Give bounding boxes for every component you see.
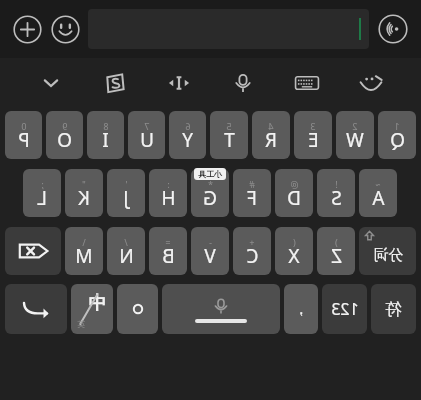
staticText: G bbox=[203, 185, 217, 211]
staticText: O bbox=[57, 127, 72, 153]
button[interactable]: 123 bbox=[322, 284, 367, 334]
button[interactable]: 2 bbox=[336, 111, 374, 159]
button[interactable]: : bbox=[149, 169, 187, 217]
button[interactable]: 分词 bbox=[359, 227, 416, 275]
button[interactable]: 9 bbox=[46, 111, 83, 159]
button[interactable]: 6 bbox=[169, 111, 206, 159]
button[interactable]: 1 bbox=[378, 111, 416, 159]
staticText: C bbox=[246, 243, 259, 269]
button[interactable]: Delete bbox=[5, 227, 61, 275]
button[interactable]: + bbox=[233, 227, 271, 275]
button[interactable]: # bbox=[233, 169, 271, 217]
button[interactable]: Keyboard layout bbox=[275, 61, 339, 105]
staticText: 小工具 bbox=[198, 169, 222, 179]
staticText: 符 bbox=[385, 299, 402, 320]
button[interactable]: Sogou input bbox=[83, 61, 147, 105]
staticText: 9 bbox=[62, 120, 68, 132]
staticText: X bbox=[288, 243, 300, 269]
staticText: 2 bbox=[352, 120, 358, 132]
staticText: V bbox=[204, 243, 216, 269]
staticText: ~ bbox=[375, 178, 381, 190]
button[interactable]: ( bbox=[275, 227, 313, 275]
staticText: 123 bbox=[331, 298, 359, 320]
button[interactable]: = bbox=[149, 227, 187, 275]
staticText: 7 bbox=[144, 120, 150, 132]
staticText: H bbox=[161, 185, 176, 211]
button[interactable]: Voice input bbox=[211, 61, 275, 105]
staticText: 分词 bbox=[373, 246, 403, 265]
button[interactable]: Comma bbox=[284, 284, 318, 334]
staticText: E bbox=[308, 127, 319, 153]
staticText: U bbox=[140, 127, 154, 153]
staticText: 6 bbox=[185, 120, 191, 132]
staticText: W bbox=[346, 127, 364, 153]
button[interactable]: ! bbox=[317, 169, 355, 217]
button[interactable]: 符 bbox=[371, 284, 416, 334]
button[interactable]: ~ bbox=[359, 169, 397, 217]
staticText: ! bbox=[335, 178, 338, 190]
staticText: = bbox=[165, 236, 171, 248]
button[interactable]: @ bbox=[275, 169, 313, 217]
button[interactable]: Collapse keyboard bbox=[18, 61, 83, 105]
button[interactable]: Emoji bbox=[46, 10, 84, 48]
button[interactable]: 5 bbox=[210, 111, 248, 159]
button[interactable]: \ bbox=[65, 227, 103, 275]
staticText: Q bbox=[390, 127, 405, 153]
staticText: # bbox=[249, 178, 255, 190]
staticText: Z bbox=[331, 243, 342, 269]
staticText: B bbox=[162, 243, 175, 269]
staticText: / bbox=[124, 236, 128, 248]
staticText: ; bbox=[41, 178, 44, 190]
button[interactable]: 7 bbox=[128, 111, 165, 159]
staticText: " bbox=[82, 178, 86, 190]
staticText: * bbox=[208, 178, 213, 190]
button[interactable]: ' bbox=[107, 169, 145, 217]
button[interactable]: * bbox=[191, 169, 229, 217]
button[interactable]: 0 bbox=[5, 111, 42, 159]
staticText: 8 bbox=[103, 120, 109, 132]
staticText: 中 bbox=[87, 292, 105, 315]
button[interactable]: Edit cursor bbox=[147, 61, 211, 105]
staticText: T bbox=[224, 127, 235, 153]
button[interactable]: Chinese / English toggle bbox=[71, 284, 113, 334]
button[interactable]: Enter bbox=[5, 284, 67, 334]
button[interactable]: - bbox=[191, 227, 229, 275]
button[interactable]: Emoticons bbox=[339, 61, 403, 105]
staticText: ( bbox=[293, 236, 296, 248]
staticText: I bbox=[102, 127, 109, 153]
staticText: + bbox=[249, 236, 255, 248]
button[interactable]: 4 bbox=[252, 111, 290, 159]
staticText: 4 bbox=[268, 120, 274, 132]
button[interactable]: / bbox=[107, 227, 145, 275]
button[interactable]: ) bbox=[317, 227, 355, 275]
button[interactable]: " bbox=[65, 169, 103, 217]
button[interactable]: Space bbox=[162, 284, 280, 334]
staticText: A bbox=[372, 185, 385, 211]
staticText: 5 bbox=[226, 120, 232, 132]
staticText: @ bbox=[290, 178, 299, 190]
staticText: \ bbox=[82, 236, 86, 248]
button[interactable]: 3 bbox=[294, 111, 332, 159]
staticText: ， bbox=[294, 300, 309, 319]
button[interactable]: Add bbox=[8, 10, 46, 48]
staticText: ) bbox=[335, 236, 338, 248]
staticText: 1 bbox=[394, 120, 400, 132]
button[interactable] bbox=[88, 9, 369, 49]
button[interactable]: Period bbox=[117, 284, 158, 334]
staticText: 英 bbox=[77, 319, 85, 329]
staticText: L bbox=[37, 185, 47, 211]
staticText: M bbox=[75, 243, 93, 269]
staticText: F bbox=[247, 185, 257, 211]
staticText: N bbox=[119, 243, 134, 269]
staticText: J bbox=[123, 185, 129, 211]
staticText: D bbox=[287, 185, 301, 211]
staticText: Y bbox=[182, 127, 193, 153]
button[interactable]: 8 bbox=[87, 111, 124, 159]
staticText: 0 bbox=[21, 120, 27, 132]
staticText: K bbox=[78, 185, 90, 211]
staticText: 3 bbox=[310, 120, 316, 132]
button[interactable]: Voice message bbox=[373, 9, 413, 49]
staticText: P bbox=[18, 127, 30, 153]
button[interactable]: ; bbox=[23, 169, 61, 217]
staticText: S bbox=[331, 185, 342, 211]
